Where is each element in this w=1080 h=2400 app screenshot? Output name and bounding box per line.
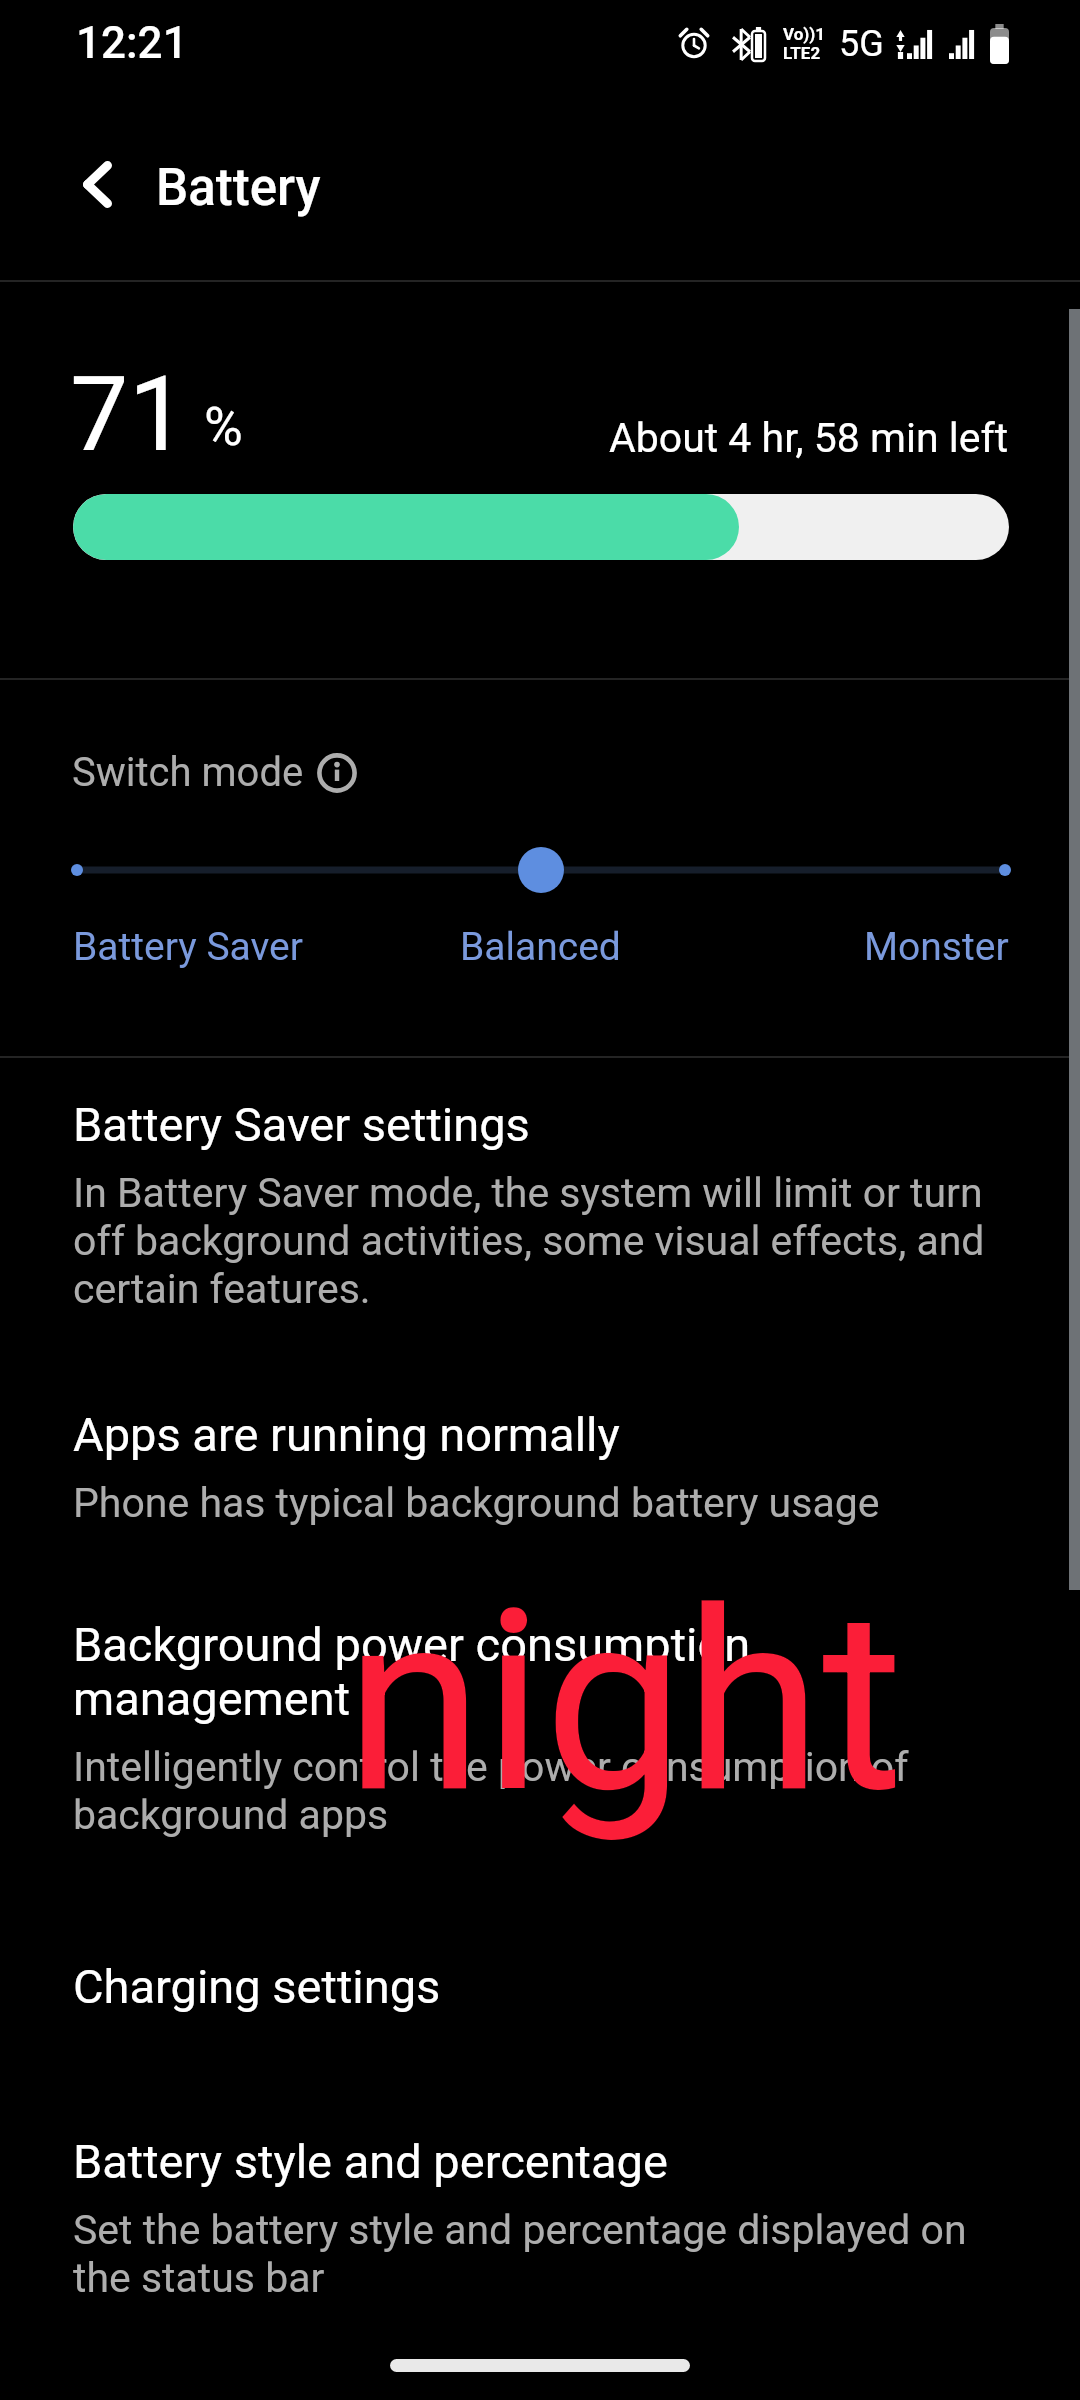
staticText: About 4 hr, 58 min left: [609, 417, 1009, 461]
staticText: Vo))1: [783, 25, 826, 44]
staticText: Battery Saver settings: [73, 1098, 530, 1152]
button[interactable]: Back: [55, 142, 139, 226]
staticText: %: [204, 401, 243, 457]
button[interactable]: Battery style and percentage: [0, 2135, 1080, 2302]
staticText: Set the battery style and percentage dis…: [73, 2206, 990, 2302]
staticText: 71: [70, 363, 187, 473]
button[interactable]: Battery Saver: [73, 927, 304, 969]
button[interactable]: Charging settings: [0, 1960, 1080, 2014]
staticText: Battery style and percentage: [73, 2135, 668, 2189]
staticText: LTE2: [783, 44, 821, 63]
button[interactable]: Monster: [864, 927, 1009, 969]
button[interactable]: Battery Saver settings: [0, 1098, 1080, 1313]
staticText: Intelligently control the power consumpt…: [73, 1743, 920, 1839]
staticText: Charging settings: [73, 1960, 441, 2014]
button[interactable]: Balanced: [460, 927, 621, 969]
staticText: Background power consumption management: [73, 1618, 920, 1726]
staticText: 12:21: [76, 17, 188, 69]
button[interactable]: Apps are running normally: [0, 1408, 1080, 1527]
staticText: Battery: [156, 157, 321, 217]
staticText: 5G: [839, 23, 884, 65]
staticText: Phone has typical background battery usa…: [73, 1479, 880, 1527]
staticText: Apps are running normally: [73, 1408, 620, 1462]
staticText: night: [345, 1556, 904, 1849]
button[interactable]: Info about switch mode: [314, 750, 360, 796]
button[interactable]: Background power consumption management: [0, 1618, 1080, 1839]
staticText: In Battery Saver mode, the system will l…: [73, 1169, 1008, 1313]
button[interactable]: Switch mode slider: [73, 835, 1009, 905]
staticText: Switch mode: [72, 751, 304, 795]
